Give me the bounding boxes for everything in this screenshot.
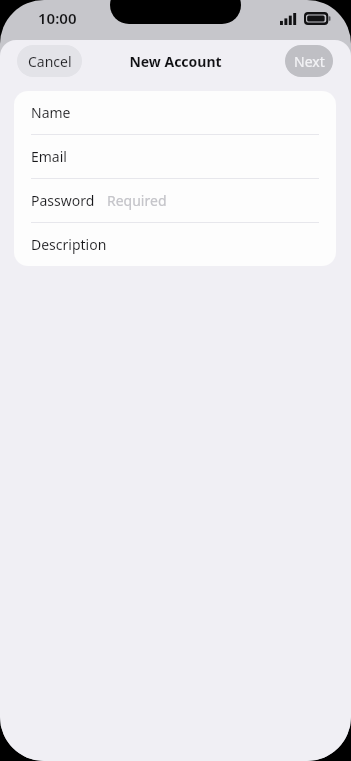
staticText: New Account [129, 52, 222, 71]
staticText: Email [31, 147, 67, 166]
button[interactable]: Description [14, 223, 336, 266]
button[interactable]: Name [14, 91, 336, 134]
button[interactable]: Next [285, 45, 333, 77]
button[interactable]: Cancel [17, 45, 82, 77]
staticText: Password [31, 191, 95, 210]
staticText: 10:00 [38, 8, 77, 28]
staticText: Next [294, 52, 325, 71]
button[interactable]: Email [14, 135, 336, 178]
button[interactable]: Password [14, 179, 336, 222]
staticText: Required [107, 191, 167, 210]
staticText: Cancel [28, 52, 72, 71]
staticText: Description [31, 235, 107, 254]
staticText: Name [31, 103, 71, 122]
